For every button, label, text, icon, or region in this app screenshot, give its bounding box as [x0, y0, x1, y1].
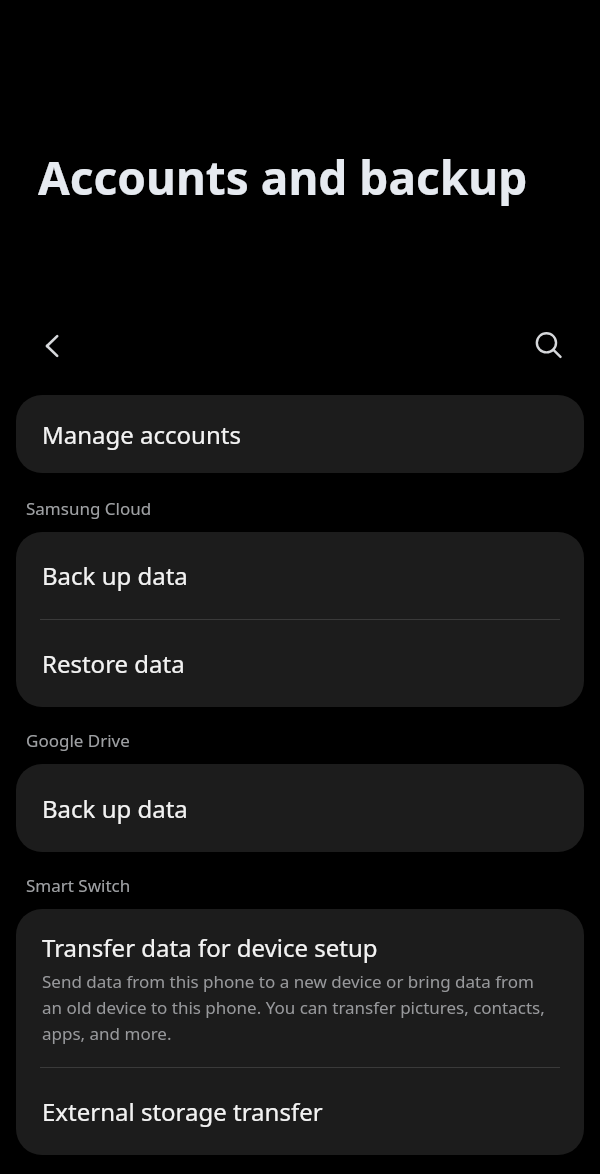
button[interactable]: External storage transfer: [16, 1068, 584, 1155]
button[interactable]: Back up data: [16, 764, 584, 852]
staticText: Smart Switch: [26, 874, 131, 897]
staticText: Google Drive: [26, 729, 130, 752]
button[interactable]: Search: [521, 318, 577, 374]
staticText: Back up data: [42, 559, 188, 592]
staticText: Restore data: [42, 647, 185, 680]
staticText: Transfer data for device setup: [42, 931, 378, 964]
button[interactable]: Transfer data for device setup: [16, 909, 584, 1067]
staticText: Samsung Cloud: [26, 497, 152, 520]
button[interactable]: Back: [25, 318, 81, 374]
button[interactable]: Back up data: [16, 532, 584, 619]
staticText: External storage transfer: [42, 1095, 323, 1128]
staticText: Send data from this phone to a new devic…: [42, 970, 558, 1045]
staticText: Manage accounts: [42, 418, 241, 451]
staticText: Back up data: [42, 792, 188, 825]
button[interactable]: Restore data: [16, 620, 584, 707]
staticText: Accounts and backup: [38, 146, 528, 209]
button[interactable]: Manage accounts: [16, 395, 584, 473]
